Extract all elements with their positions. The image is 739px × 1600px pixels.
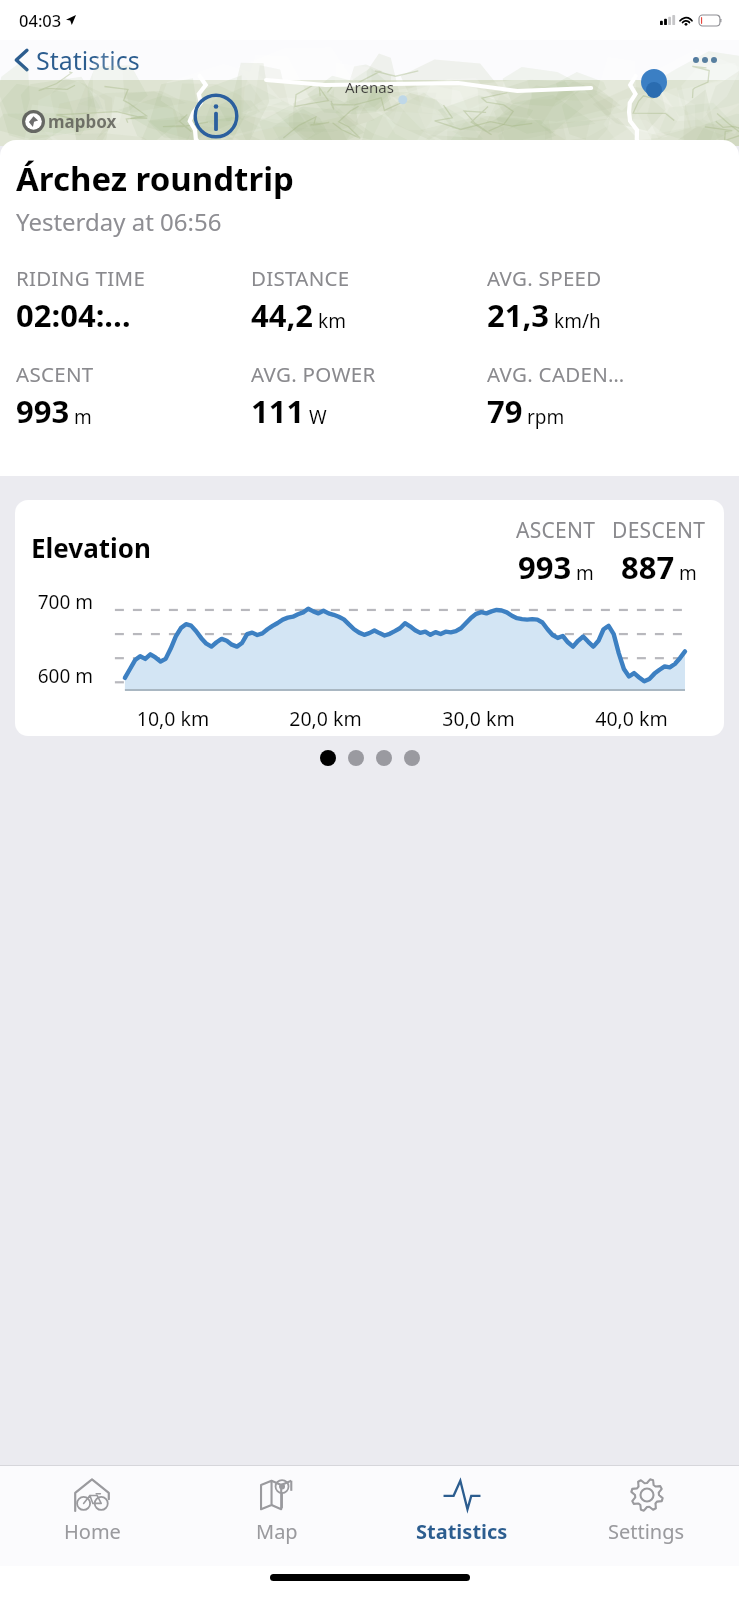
staticText: Statistics — [416, 1518, 508, 1545]
button[interactable]: Statistics — [369, 1466, 554, 1566]
staticText: 10,0 km — [97, 705, 249, 732]
button[interactable]: Page 4 — [404, 750, 420, 766]
button[interactable]: Page 1 — [320, 750, 336, 766]
staticText: DISTANCE — [251, 264, 350, 292]
button[interactable]: More options — [671, 40, 739, 80]
staticText: Map — [256, 1518, 298, 1545]
staticText: 700 m — [19, 589, 93, 615]
staticText: 04:03 — [19, 9, 62, 31]
staticText: Arenas — [345, 77, 394, 97]
staticText: m — [679, 560, 697, 586]
staticText: Statistics — [36, 43, 140, 77]
staticText: ASCENT — [16, 360, 94, 388]
staticText: 02:04:… — [16, 294, 131, 336]
button[interactable]: Page 3 — [376, 750, 392, 766]
staticText: rpm — [527, 404, 565, 430]
staticText: AVG. POWER — [251, 360, 376, 388]
button[interactable]: Home — [0, 1466, 184, 1566]
button[interactable]: Map attribution info — [192, 92, 240, 140]
staticText: mapbox — [48, 110, 117, 133]
staticText: m — [74, 404, 92, 430]
staticText: Yesterday at 06:56 — [16, 205, 222, 238]
staticText: Settings — [608, 1518, 685, 1545]
staticText: km/h — [554, 308, 601, 334]
staticText: 30,0 km — [402, 705, 555, 732]
staticText: 21,3 — [487, 294, 550, 336]
staticText: W — [309, 404, 327, 430]
staticText: 44,2 — [251, 294, 314, 336]
staticText: 40,0 km — [555, 705, 708, 732]
staticText: 20,0 km — [249, 705, 402, 732]
staticText: 600 m — [19, 663, 93, 689]
button[interactable]: Elevation — [15, 500, 724, 736]
staticText: RIDING TIME — [16, 264, 146, 292]
staticText: Elevation — [31, 530, 516, 565]
button[interactable]: Page 2 — [348, 750, 364, 766]
staticText: 111 — [251, 390, 305, 432]
button[interactable]: Settings — [554, 1466, 739, 1566]
staticText: ASCENT — [516, 516, 596, 545]
staticText: Árchez roundtrip — [16, 156, 294, 201]
button[interactable]: Map — [184, 1466, 369, 1566]
staticText: AVG. CADEN… — [487, 360, 625, 388]
button[interactable]: Statistics — [0, 40, 148, 80]
other: Mapbox — [22, 110, 45, 133]
staticText: m — [576, 560, 594, 586]
staticText: Home — [64, 1518, 121, 1545]
staticText: km — [318, 308, 346, 334]
staticText: AVG. SPEED — [487, 264, 602, 292]
staticText: 887 — [621, 546, 675, 588]
staticText: DESCENT — [612, 516, 706, 545]
staticText: 993 — [518, 546, 572, 588]
staticText: 993 — [16, 390, 70, 432]
staticText: 79 — [487, 390, 523, 432]
